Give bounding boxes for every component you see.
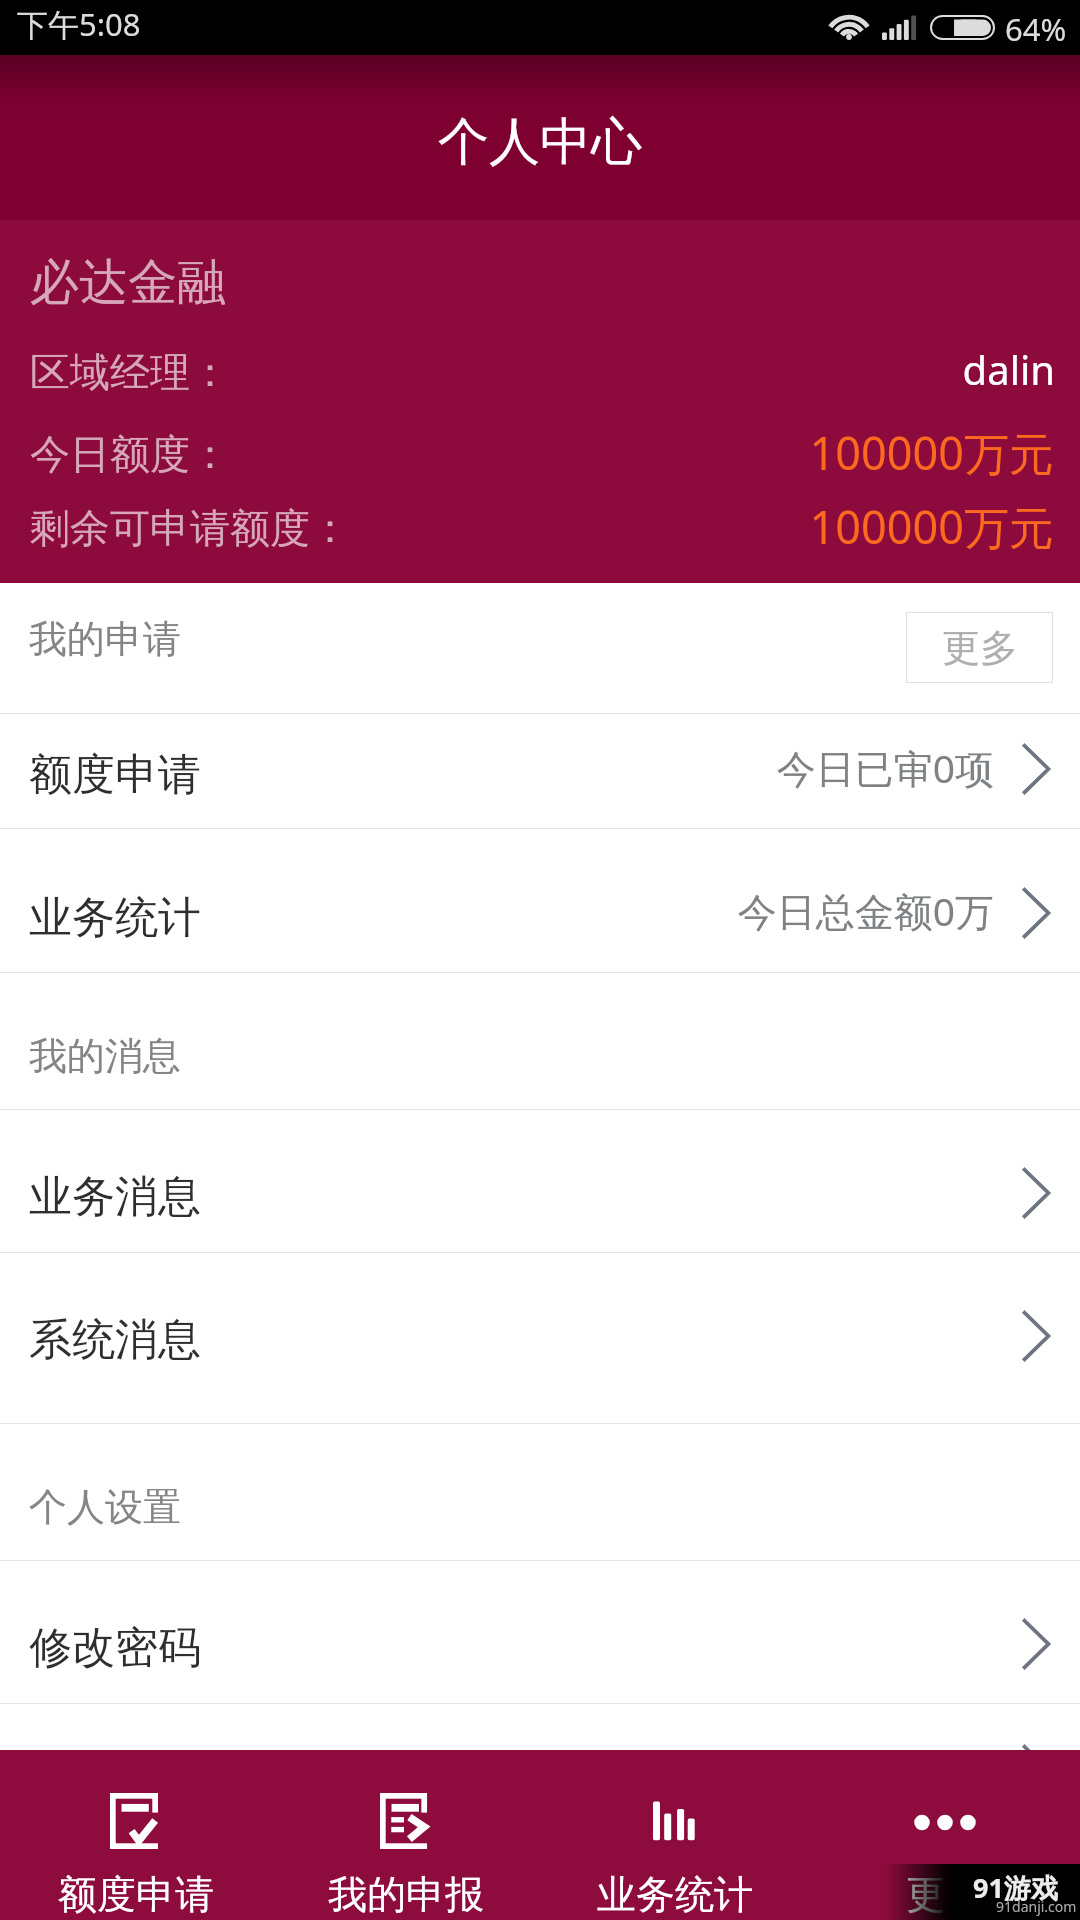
staticText: 我的申报 <box>328 1870 484 1919</box>
button[interactable] <box>0 1424 1080 1560</box>
other: 更多 <box>914 1814 976 1831</box>
staticText: 系统消息 <box>29 1313 201 1367</box>
other: 业务统计 <box>653 1801 695 1841</box>
staticText: 100000万元 <box>809 496 1054 557</box>
other: 额度申请 <box>110 1793 158 1849</box>
staticText: 必达金融 <box>30 252 226 314</box>
staticText: 业务统计 <box>29 891 201 945</box>
staticText: 今日额度： <box>30 429 230 479</box>
staticText: 区域经理： <box>30 347 230 397</box>
other: Wi-Fi <box>831 14 867 40</box>
staticText: dalin <box>962 342 1055 396</box>
staticText: 下午5:08 <box>17 3 141 45</box>
button[interactable] <box>0 1253 1080 1423</box>
button[interactable] <box>0 1704 1080 1751</box>
button[interactable]: 业务统计 <box>540 1750 810 1920</box>
staticText: 额度申请 <box>29 748 201 802</box>
staticText: 91danji.com <box>996 1897 1077 1916</box>
staticText: 我的申请 <box>29 615 181 663</box>
button[interactable] <box>0 1561 1080 1703</box>
button[interactable] <box>0 973 1080 1109</box>
button[interactable] <box>0 714 1080 828</box>
button[interactable] <box>0 583 1080 713</box>
staticText: 今日已审0项 <box>776 741 994 794</box>
staticText: 修改密码 <box>29 1621 201 1675</box>
staticText: 额度申请 <box>58 1870 214 1919</box>
other: Battery 64% <box>930 15 995 40</box>
button[interactable]: 更多 <box>906 612 1053 683</box>
staticText: 64% <box>1005 8 1067 50</box>
other: 我的申报 <box>380 1793 429 1849</box>
button[interactable] <box>0 1110 1080 1252</box>
staticText: 更多 <box>906 1870 984 1919</box>
staticText: 个人设置 <box>29 1483 181 1531</box>
staticText: 业务统计 <box>597 1870 753 1919</box>
staticText: 我的消息 <box>29 1032 181 1080</box>
staticText: 个人中心 <box>438 110 642 174</box>
staticText: 91游戏 <box>973 1869 1058 1906</box>
staticText: 剩余可申请额度： <box>30 503 350 553</box>
staticText: 更多 <box>942 624 1018 672</box>
staticText: 今日总金额0万 <box>737 884 994 937</box>
button[interactable]: 我的申报 <box>270 1750 540 1920</box>
staticText: 100000万元 <box>809 422 1054 483</box>
staticText: 业务消息 <box>29 1170 201 1224</box>
button[interactable]: 额度申请 <box>0 1750 270 1920</box>
other: Signal <box>882 15 922 45</box>
button[interactable] <box>0 829 1080 972</box>
button[interactable]: 更多 <box>810 1750 1080 1920</box>
